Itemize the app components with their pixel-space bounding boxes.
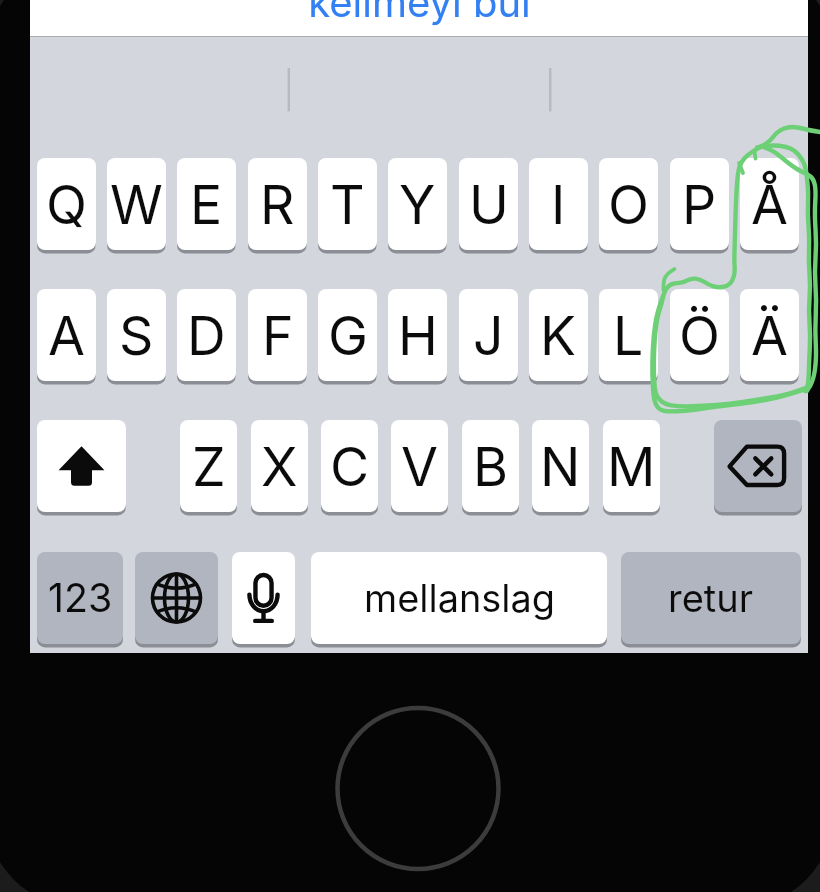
button[interactable]: I <box>529 158 588 250</box>
button[interactable]: A <box>37 289 96 381</box>
staticText: L <box>613 303 644 368</box>
button[interactable]: L <box>599 289 658 381</box>
button[interactable]: T <box>318 158 377 250</box>
button[interactable]: C <box>321 420 378 512</box>
button[interactable]: Backspace <box>714 420 802 512</box>
staticText: M <box>607 434 656 499</box>
button[interactable]: W <box>107 158 166 250</box>
button[interactable]: Ä <box>740 289 799 381</box>
staticText: kelimeyi bul <box>308 0 531 26</box>
staticText: S <box>119 303 154 368</box>
staticText: H <box>398 303 438 368</box>
button[interactable]: F <box>248 289 307 381</box>
staticText: Ä <box>751 303 788 368</box>
staticText: Y <box>399 172 436 237</box>
button[interactable]: Q <box>37 158 96 250</box>
staticText: I <box>551 172 566 237</box>
button[interactable]: E <box>177 158 236 250</box>
staticText: X <box>261 434 298 499</box>
staticText: F <box>262 303 294 368</box>
staticText: W <box>110 172 163 237</box>
staticText: 123 <box>48 574 113 622</box>
staticText: R <box>260 172 295 237</box>
staticText: K <box>540 303 577 368</box>
button[interactable]: Z <box>180 420 237 512</box>
staticText: O <box>608 172 649 237</box>
staticText: P <box>682 172 717 237</box>
staticText: G <box>328 303 368 368</box>
button[interactable]: S <box>107 289 166 381</box>
button[interactable]: Å <box>740 158 799 250</box>
button[interactable]: R <box>248 158 307 250</box>
staticText: V <box>401 434 438 499</box>
button[interactable]: M <box>603 420 660 512</box>
staticText: U <box>469 172 509 237</box>
button[interactable]: X <box>251 420 308 512</box>
staticText: Å <box>751 172 788 237</box>
staticText: Q <box>46 172 87 237</box>
button[interactable]: Shift <box>37 420 126 512</box>
button[interactable]: H <box>388 289 447 381</box>
staticText: T <box>330 172 365 237</box>
button[interactable]: P <box>670 158 729 250</box>
button[interactable]: V <box>391 420 448 512</box>
button[interactable]: J <box>459 289 518 381</box>
button[interactable]: N <box>532 420 589 512</box>
staticText: N <box>540 434 581 499</box>
button[interactable]: U <box>459 158 518 250</box>
button[interactable]: K <box>529 289 588 381</box>
staticText: mellanslag <box>364 575 555 621</box>
button[interactable]: O <box>599 158 658 250</box>
staticText: retur <box>668 575 754 621</box>
staticText: Z <box>192 434 226 499</box>
button[interactable]: kelimeyi bul <box>290 0 548 30</box>
button[interactable]: Ö <box>670 289 729 381</box>
staticText: B <box>473 434 509 499</box>
button[interactable]: B <box>462 420 519 512</box>
button[interactable]: Next keyboard <box>135 552 218 644</box>
button[interactable]: G <box>318 289 377 381</box>
button[interactable]: 123 <box>37 552 123 644</box>
staticText: A <box>48 303 85 368</box>
button[interactable]: D <box>177 289 236 381</box>
button[interactable]: Y <box>388 158 447 250</box>
button[interactable]: Dictate <box>232 552 295 644</box>
staticText: Ö <box>679 303 720 368</box>
staticText: J <box>473 303 504 368</box>
staticText: C <box>330 434 370 499</box>
staticText: E <box>190 172 223 237</box>
button[interactable]: mellanslag <box>311 552 607 644</box>
button[interactable]: retur <box>621 552 801 644</box>
staticText: D <box>187 303 226 368</box>
